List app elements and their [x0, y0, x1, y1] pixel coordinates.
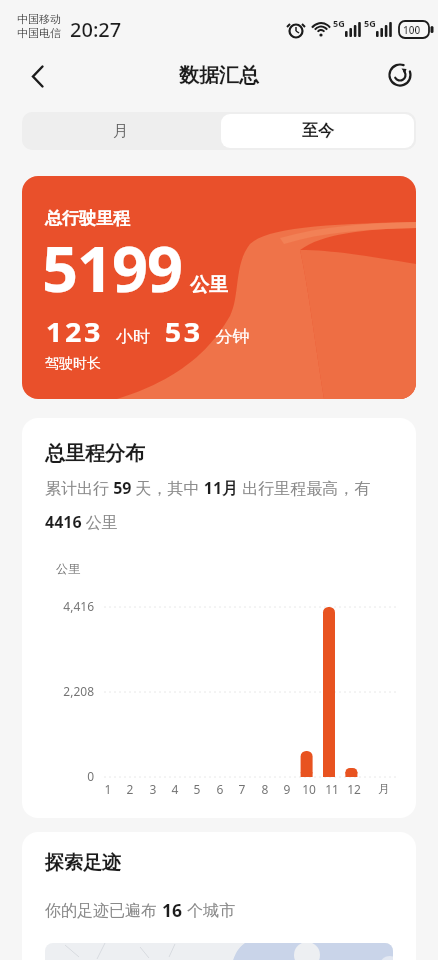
staticText: 4,416 [22, 598, 94, 614]
staticText: 4 [164, 781, 186, 797]
staticText: 0 [22, 768, 94, 784]
staticText: 中国移动 [17, 12, 61, 26]
staticText: 累计出行 59 天，其中 11月 出行里程最高，有 4416 公里 [45, 477, 415, 533]
staticText: 公里 [56, 561, 80, 576]
staticText: 驾驶时长 [45, 355, 101, 373]
staticText: 月 [378, 781, 390, 796]
staticText: 11 [321, 781, 343, 797]
staticText: 5G [364, 17, 376, 29]
staticText: 你的足迹已遍布 [45, 899, 162, 921]
staticText: 总行驶里程 [45, 208, 130, 229]
staticText: 分钟 [216, 327, 249, 347]
staticText: 探索足迹 [45, 851, 121, 875]
button[interactable]: 至今 [221, 114, 414, 148]
staticText: 5G [333, 17, 345, 29]
button[interactable]: 月 [22, 112, 219, 150]
staticText: 6 [209, 781, 231, 797]
staticText: 1 [97, 781, 119, 797]
staticText: 2,208 [22, 683, 94, 699]
staticText: 8 [254, 781, 276, 797]
staticText: 中国电信 [17, 26, 61, 40]
button[interactable] [24, 62, 54, 92]
staticText: 至今 [302, 121, 334, 141]
staticText: 100 [403, 23, 421, 37]
staticText: 5199 [42, 225, 183, 311]
staticText: 数据汇总 [179, 63, 259, 88]
staticText: 月 [113, 122, 128, 141]
staticText: 20:27 [70, 16, 122, 43]
staticText: 10 [298, 781, 320, 797]
staticText: 16 [162, 898, 183, 922]
staticText: 3 [142, 781, 164, 797]
staticText: 公里 [190, 273, 228, 297]
button[interactable] [385, 60, 415, 90]
staticText: 53 [165, 313, 203, 350]
staticText: 总里程分布 [45, 441, 145, 466]
staticText: 9 [276, 781, 298, 797]
staticText: 12 [343, 781, 365, 797]
staticText: 个城市 [183, 899, 236, 921]
staticText: 小时 [116, 327, 150, 347]
staticText: 2 [119, 781, 141, 797]
staticText: 7 [231, 781, 253, 797]
staticText: 5 [186, 781, 208, 797]
staticText: 123 [46, 313, 103, 350]
